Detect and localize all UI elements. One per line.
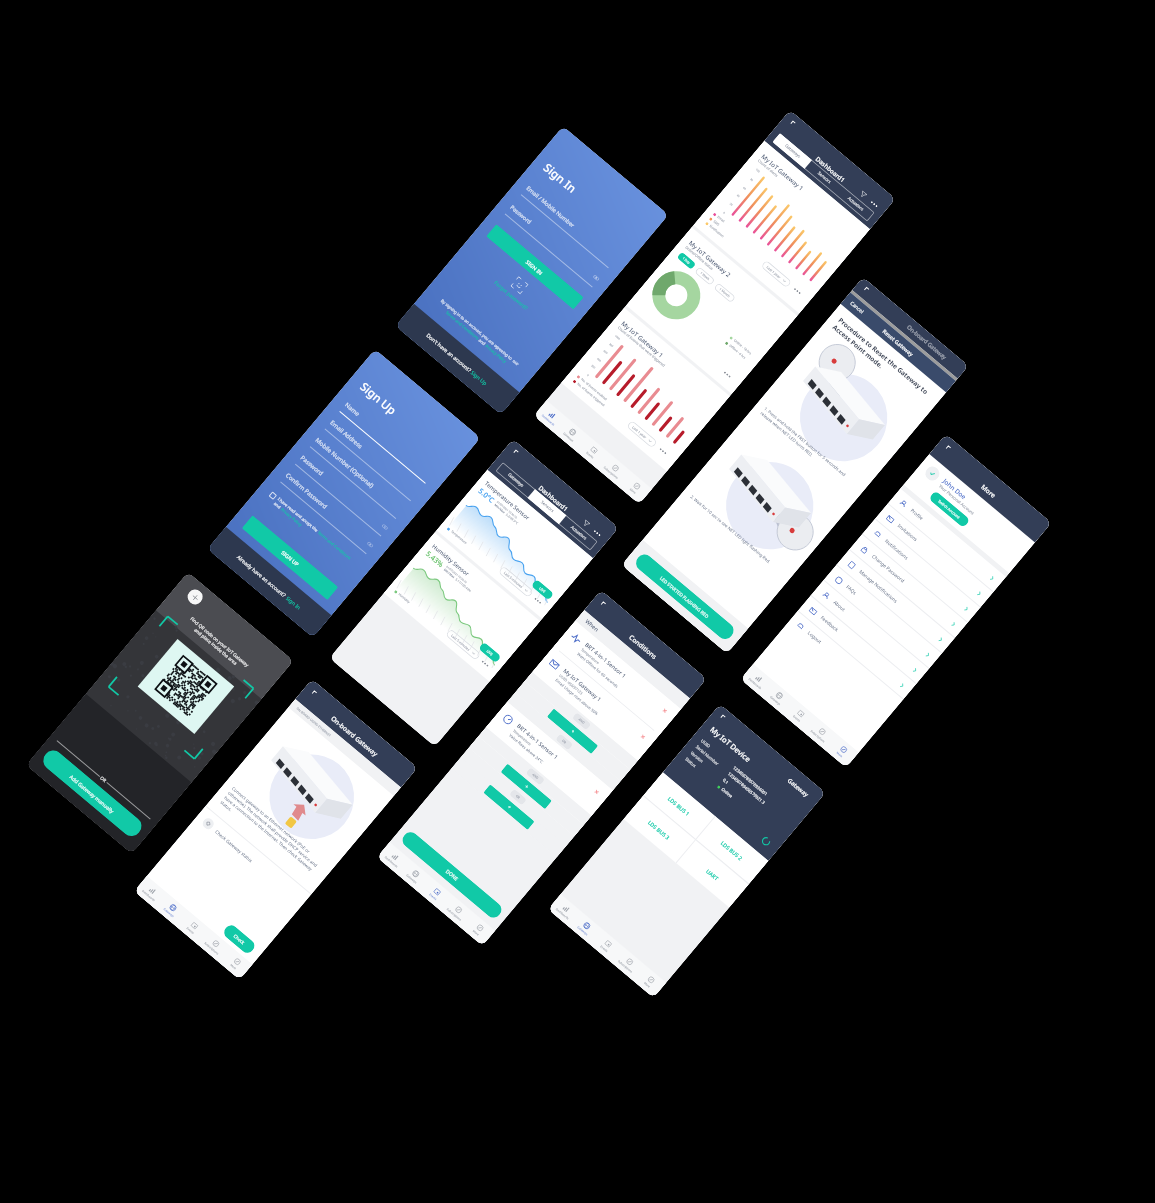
button[interactable]: Actuators (836, 186, 875, 222)
button[interactable]: Add condition (500, 764, 552, 809)
button[interactable]: Add condition (483, 784, 535, 830)
button[interactable]: More (655, 444, 672, 459)
button[interactable]: Gateways (495, 462, 535, 498)
button[interactable]: Gateways (397, 859, 431, 892)
button[interactable]: Gateways (554, 418, 588, 450)
button[interactable]: More (218, 947, 252, 980)
button[interactable]: More options (868, 198, 881, 211)
button[interactable]: Gateways (155, 893, 188, 926)
button[interactable]: Add condition (547, 708, 598, 754)
button[interactable]: DONE (399, 829, 505, 921)
button[interactable]: 1 Day (677, 251, 696, 270)
button[interactable]: Last 1 year (626, 420, 658, 448)
button[interactable]: Back (510, 447, 521, 459)
button[interactable]: Subscriptions (596, 453, 631, 486)
staticText: Gateways (163, 907, 175, 918)
other: Remove (639, 733, 648, 742)
button[interactable]: Already have an account? (207, 527, 332, 638)
button[interactable]: LDS BUS 1 (643, 772, 715, 839)
staticText: 20 (729, 202, 734, 207)
button[interactable]: Events (782, 698, 816, 732)
button[interactable]: Feedback (798, 596, 916, 699)
button[interactable]: Dashboards (548, 894, 581, 927)
button[interactable]: SIGN UP (242, 515, 338, 600)
button[interactable]: More (618, 471, 652, 504)
button[interactable]: Sensors (804, 160, 843, 195)
button[interactable]: SIGN IN (486, 224, 584, 310)
staticText: 600 (602, 349, 609, 355)
button[interactable]: Forgot password? (492, 279, 529, 312)
button[interactable]: Dashboards (533, 400, 567, 433)
button[interactable]: Dashboards (377, 842, 410, 875)
button[interactable]: Subscriptions (439, 895, 474, 928)
button[interactable]: Back (942, 443, 954, 454)
button[interactable]: More (632, 965, 666, 998)
button[interactable]: Subscriptions (197, 929, 231, 962)
button[interactable]: Check (221, 922, 257, 956)
staticText: Temperature (450, 529, 468, 545)
button[interactable]: Refresh (760, 835, 772, 848)
button[interactable]: LIVE (531, 579, 554, 601)
button[interactable]: Last 1 year (760, 260, 792, 288)
button[interactable]: Subscriptions (610, 947, 645, 980)
button[interactable]: 1 Week (694, 266, 715, 286)
button[interactable]: About (811, 580, 929, 684)
staticText: Dashboards (384, 855, 399, 868)
button[interactable]: Gateways (772, 133, 812, 169)
staticText: Gateways (769, 695, 781, 706)
button[interactable]: FAQs (824, 565, 942, 668)
button[interactable]: Gateways (761, 681, 794, 714)
button[interactable]: Subscriptions (803, 716, 837, 750)
button[interactable]: Manage Notifications (837, 550, 955, 653)
button[interactable]: Logout (785, 611, 903, 714)
staticText: + (523, 783, 530, 790)
staticText: Offline - 6 hrs (728, 344, 747, 360)
button[interactable]: More (719, 367, 736, 383)
staticText: Humidity (397, 592, 411, 604)
staticText: Logout (806, 630, 893, 704)
button[interactable]: More (789, 283, 806, 299)
button[interactable]: More (477, 656, 494, 672)
button[interactable]: Back (787, 118, 798, 130)
button[interactable]: Switch Account (928, 490, 970, 528)
button[interactable]: Events (575, 435, 609, 468)
button[interactable]: Last 5 minutes (498, 565, 534, 598)
button[interactable]: Don't have an account? (395, 304, 520, 415)
button[interactable]: Dashboards (740, 664, 774, 696)
button[interactable]: Actuators (559, 515, 598, 551)
button[interactable]: LDS BUS 2 (696, 816, 768, 884)
button[interactable]: Back (861, 285, 872, 296)
button[interactable]: Invitations (875, 504, 993, 607)
button[interactable]: Filter (858, 189, 868, 199)
button[interactable]: Profile (888, 488, 1006, 592)
button[interactable]: Events (418, 877, 452, 910)
button[interactable]: LED STARTED FLASHING RED (633, 551, 737, 642)
button[interactable]: LIVE (478, 642, 501, 663)
button[interactable]: Back (308, 688, 320, 699)
button[interactable]: Change Password (850, 534, 967, 638)
button[interactable]: More (825, 734, 859, 768)
button[interactable]: Add Gateway manually (39, 746, 145, 840)
button[interactable]: Notifications (862, 519, 980, 622)
button[interactable]: Gateways (568, 911, 602, 944)
button[interactable]: More (530, 593, 546, 609)
staticText: FAQs (845, 584, 929, 656)
staticText: + (569, 728, 576, 735)
button[interactable]: Events (589, 929, 623, 962)
button[interactable]: Sensors (527, 489, 566, 524)
button[interactable]: UART (676, 840, 748, 908)
button[interactable]: LDS BUS 3 (624, 796, 695, 863)
button[interactable]: Back (717, 712, 728, 724)
button[interactable]: Last 5 minutes (445, 628, 481, 661)
button[interactable]: Cancel (848, 300, 865, 315)
button[interactable]: Dashboards (134, 876, 167, 909)
button[interactable] (269, 491, 277, 500)
button[interactable]: More (461, 913, 495, 946)
staticText: UART (705, 867, 720, 882)
button[interactable]: 1 Month (713, 282, 736, 303)
button[interactable]: Events (175, 911, 210, 944)
button[interactable]: Filter (581, 518, 591, 528)
button[interactable]: More options (591, 527, 604, 540)
button[interactable]: Add (185, 586, 206, 607)
button[interactable]: Back (597, 599, 609, 610)
